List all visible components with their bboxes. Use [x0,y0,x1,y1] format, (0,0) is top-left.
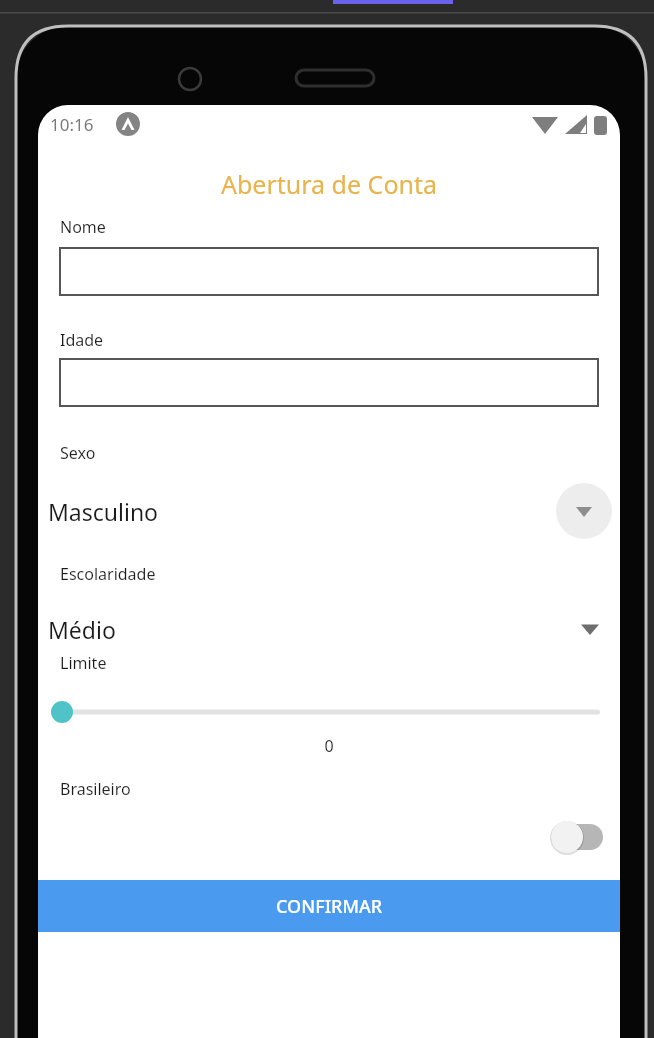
staticText: Nome [60,216,106,238]
button[interactable] [59,247,599,296]
staticText: CONFIRMAR [276,894,383,919]
staticText: 10:16 [50,113,94,136]
staticText: Idade [60,329,104,351]
button[interactable] [59,358,599,407]
button[interactable]: CONFIRMAR [38,880,620,932]
button[interactable]: Brasileiro toggle [543,815,611,859]
staticText: Masculino [48,496,159,527]
other: App notification [116,112,140,136]
staticText: Médio [48,614,116,645]
staticText: Abertura de Conta [38,167,620,201]
staticText: Sexo [60,442,96,464]
staticText: Limite [60,652,107,674]
staticText: Escolaridade [60,563,156,585]
button[interactable]: Médio [38,605,620,653]
button[interactable]: Masculino [38,480,620,542]
staticText: 0 [38,735,620,757]
button[interactable]: Limite slider [38,695,620,729]
staticText: Brasileiro [60,778,131,800]
